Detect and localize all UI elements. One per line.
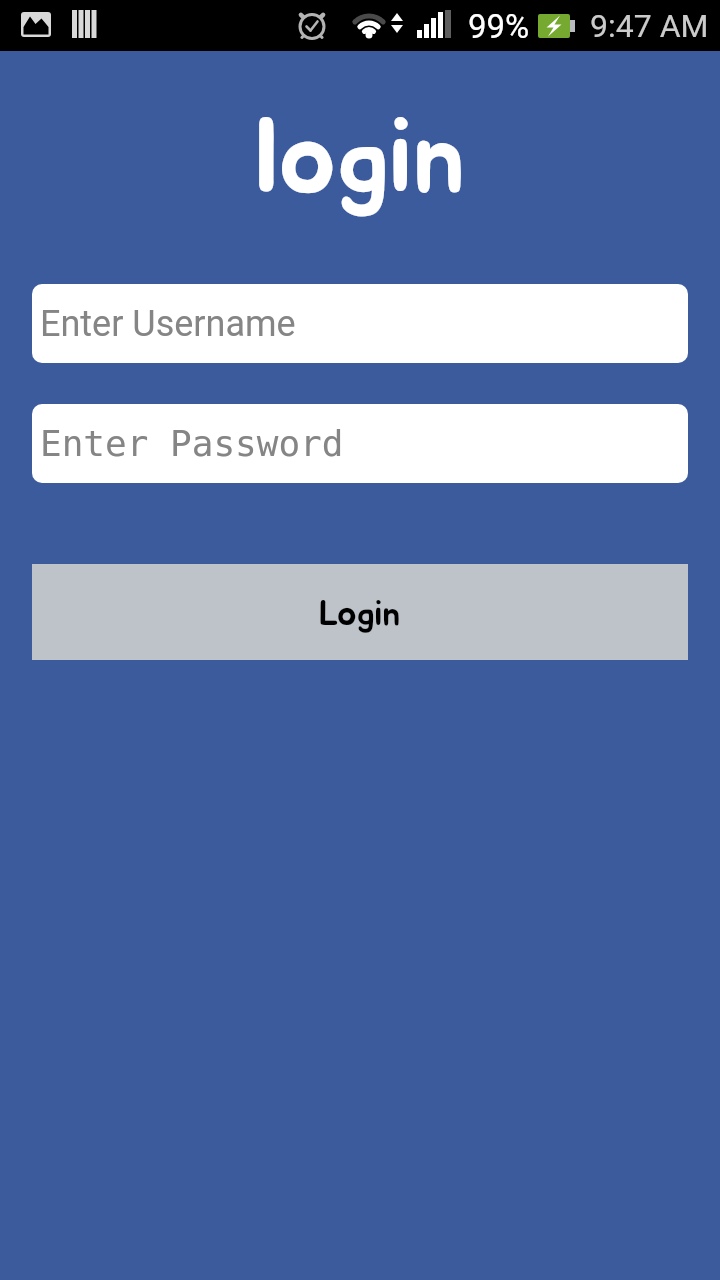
button[interactable]: Enter Password [32,404,688,483]
staticText: login [0,107,720,213]
staticText: Enter Password [40,423,344,465]
staticText: 99% [468,7,530,46]
button[interactable]: Enter Username [32,284,688,363]
staticText: Login [319,596,401,632]
button[interactable]: Login [32,564,688,660]
staticText: Enter Username [40,303,296,345]
staticText: 9:47 AM [590,7,709,45]
